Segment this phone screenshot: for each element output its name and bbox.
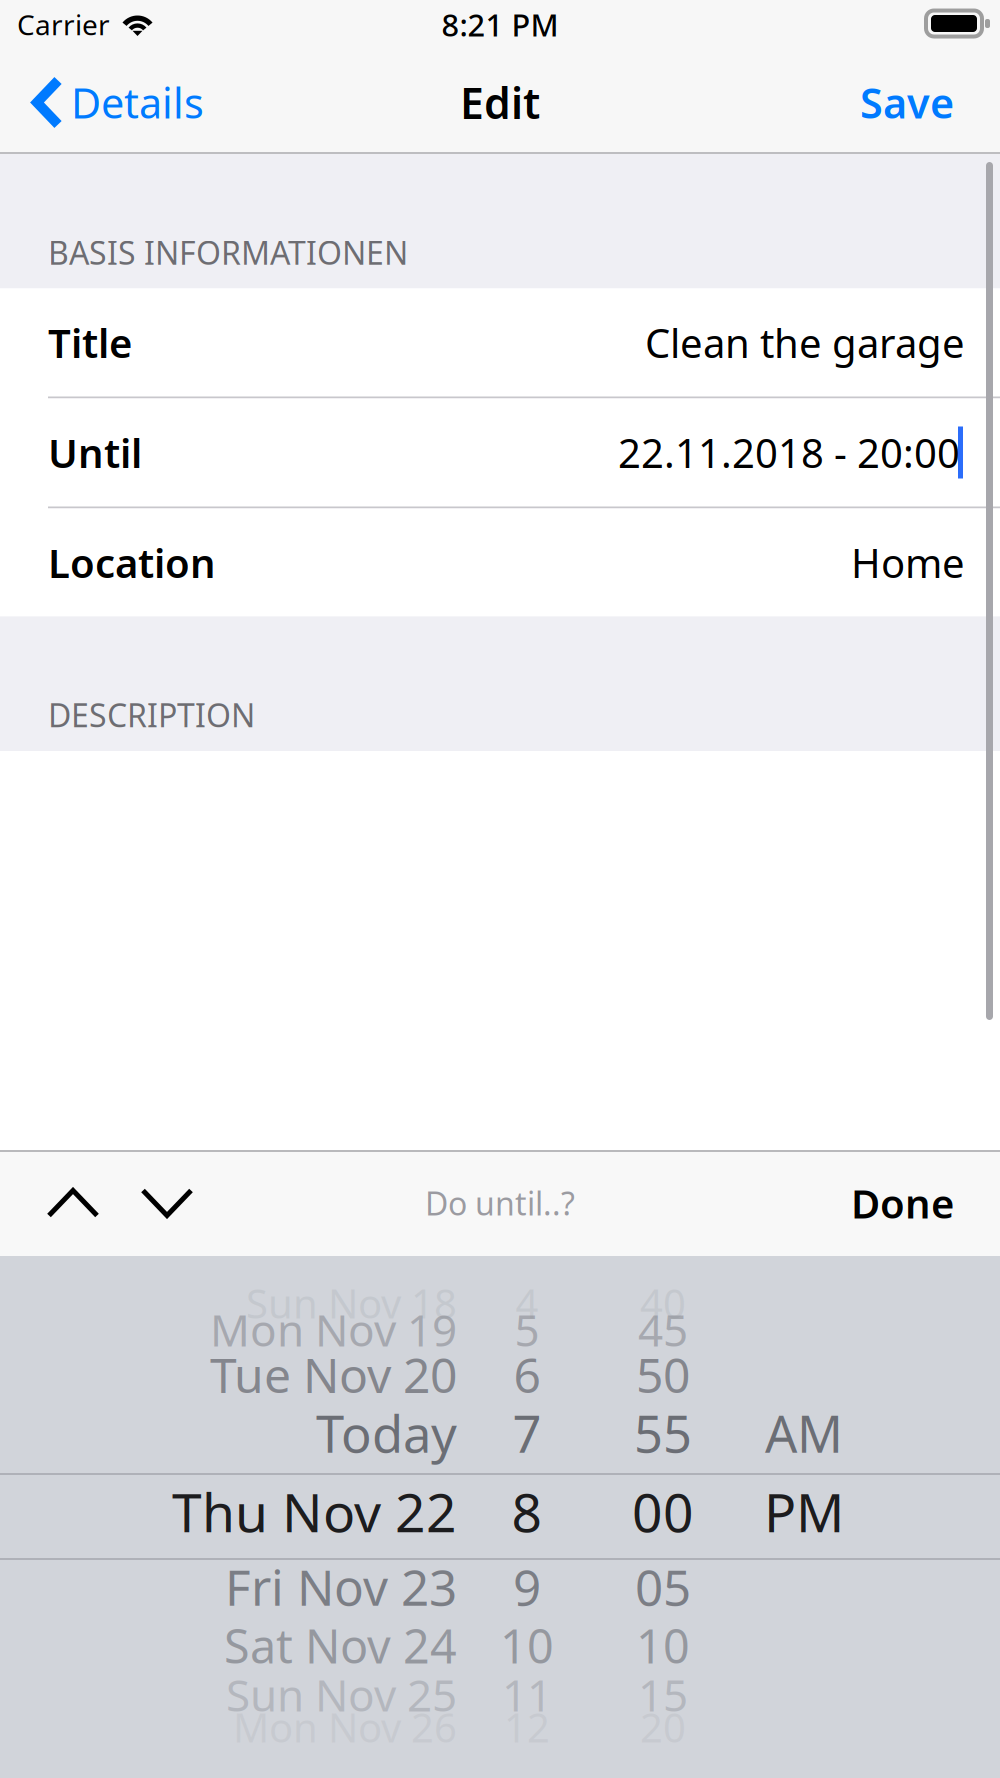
button[interactable]: Save	[834, 52, 1000, 153]
staticText: 05	[635, 1554, 691, 1619]
staticText: 8	[511, 1476, 542, 1547]
staticText: Until	[48, 426, 142, 479]
staticText: 11	[502, 1665, 552, 1724]
staticText: Sun Nov 18	[246, 1276, 457, 1329]
staticText: Edit	[460, 74, 540, 131]
staticText: Sun Nov 25	[226, 1665, 457, 1724]
staticText: Save	[860, 75, 954, 130]
staticText: 22.11.2018 - 20:00	[618, 426, 960, 479]
staticText: 15	[638, 1665, 688, 1724]
staticText: Thu Nov 22	[172, 1476, 457, 1547]
staticText: 45	[638, 1300, 688, 1359]
staticText: 20	[640, 1700, 686, 1753]
staticText: Tue Nov 20	[210, 1343, 457, 1406]
staticText: Sat Nov 24	[224, 1614, 457, 1676]
staticText: 4	[515, 1276, 538, 1329]
staticText: 8:21 PM	[441, 4, 558, 45]
staticText: 5	[514, 1300, 539, 1359]
staticText: 55	[634, 1399, 692, 1467]
staticText: 10	[500, 1614, 554, 1676]
button[interactable]: Details	[0, 52, 222, 153]
button[interactable]: Next field	[116, 1150, 210, 1256]
staticText: Location	[48, 536, 216, 589]
staticText: Do until..?	[425, 1182, 575, 1224]
staticText: DESCRIPTION	[48, 693, 255, 736]
staticText: Home	[851, 536, 965, 589]
staticText: Done	[851, 1176, 954, 1229]
staticText: Mon Nov 26	[233, 1700, 457, 1753]
staticText: Clean the garage	[645, 316, 965, 369]
button[interactable]: Done	[827, 1150, 1000, 1256]
staticText: Title	[48, 316, 132, 369]
button[interactable]: Location	[0, 508, 1000, 616]
staticText: 10	[636, 1614, 690, 1676]
staticText: 00	[632, 1476, 694, 1547]
staticText: Mon Nov 19	[210, 1300, 457, 1359]
staticText: PM	[764, 1476, 844, 1547]
staticText: 50	[636, 1343, 690, 1406]
button[interactable]: Previous field	[22, 1150, 116, 1256]
staticText: Details	[71, 75, 204, 130]
staticText: Today	[316, 1399, 457, 1467]
button[interactable]: Title	[0, 288, 1000, 396]
staticText: Fri Nov 23	[225, 1554, 457, 1619]
staticText: 12	[504, 1700, 550, 1753]
staticText: 7	[512, 1399, 541, 1467]
staticText: 6	[513, 1343, 540, 1406]
staticText: 9	[513, 1554, 541, 1619]
staticText: 40	[640, 1276, 686, 1329]
staticText: AM	[765, 1399, 843, 1467]
staticText: Carrier	[17, 6, 110, 43]
button[interactable]: Until	[0, 398, 1000, 506]
staticText: BASIS INFORMATIONEN	[48, 231, 408, 273]
